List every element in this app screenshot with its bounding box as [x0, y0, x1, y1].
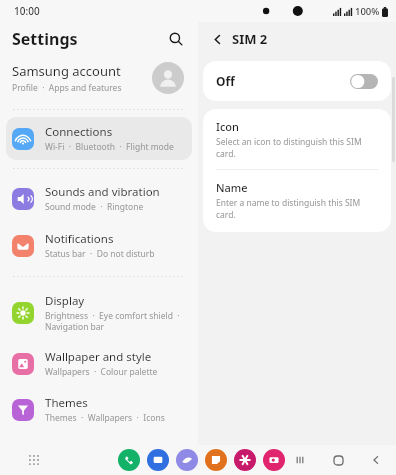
staticText: Samsung account	[12, 62, 121, 80]
button[interactable]: Sounds and vibration	[6, 177, 192, 220]
button[interactable]: Display	[6, 286, 192, 339]
button[interactable]: Wallpaper and style	[6, 342, 192, 385]
staticText: Sound mode · Ringtone	[45, 201, 144, 213]
button[interactable]: Notes	[205, 449, 227, 471]
button[interactable]: Home	[328, 450, 348, 470]
button[interactable]: Notifications	[6, 224, 192, 267]
staticText: Themes · Wallpapers · Icons	[45, 412, 165, 424]
button[interactable]: Internet	[176, 449, 198, 471]
button[interactable]: Search	[162, 25, 190, 53]
staticText: Status bar · Do not disturb	[45, 248, 155, 260]
staticText: 10:00	[14, 4, 40, 18]
button[interactable]: Apps	[22, 448, 46, 472]
button[interactable]: Phone	[118, 449, 140, 471]
button[interactable]: Connections	[6, 117, 192, 160]
staticText: Select an icon to distinguish this SIM c…	[216, 136, 378, 160]
staticText: Icon	[216, 119, 239, 134]
staticText: Name	[216, 180, 248, 195]
staticText: Enter a name to distinguish this SIM car…	[216, 197, 378, 221]
staticText: Wallpaper and style	[45, 349, 152, 365]
staticText: 100%	[355, 5, 380, 18]
button[interactable]: Recents	[290, 450, 310, 470]
staticText: Profile · Apps and features	[12, 82, 122, 94]
button[interactable]: Icon	[203, 109, 391, 169]
button[interactable]: Back	[206, 28, 228, 50]
button[interactable]: Samsung account	[0, 56, 198, 102]
staticText: Notifications	[45, 231, 114, 247]
button[interactable]: Back	[366, 450, 386, 470]
staticText: Sounds and vibration	[45, 184, 160, 200]
staticText: Display	[45, 293, 85, 309]
button[interactable]: Name	[203, 170, 391, 232]
staticText: Brightness · Eye comfort shield · Naviga…	[45, 310, 186, 332]
staticText: Settings	[12, 28, 78, 50]
button[interactable]: Galaxy Store	[234, 449, 256, 471]
staticText: Wi-Fi · Bluetooth · Flight mode	[45, 141, 174, 153]
staticText: Themes	[45, 395, 88, 411]
staticText: Off	[216, 73, 350, 89]
staticText: SIM 2	[232, 30, 268, 48]
button[interactable]: Off	[203, 61, 391, 101]
button[interactable]: Messages	[147, 449, 169, 471]
button[interactable]: Themes	[6, 388, 192, 431]
button[interactable]: Camera	[263, 449, 285, 471]
staticText: Connections	[45, 124, 113, 140]
staticText: Wallpapers · Colour palette	[45, 366, 158, 378]
